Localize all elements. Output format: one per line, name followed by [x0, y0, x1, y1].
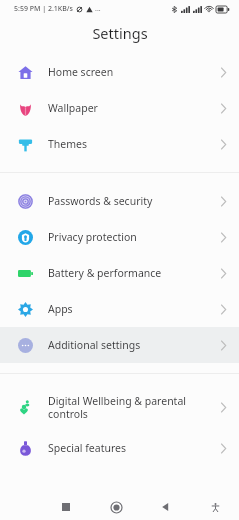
button[interactable]: Back	[155, 497, 175, 517]
staticText: Battery & performance	[48, 266, 221, 280]
staticText: Wallpaper	[48, 101, 221, 115]
button[interactable]: Special features	[0, 430, 239, 466]
button[interactable]: Apps	[0, 291, 239, 327]
button[interactable]: Additional settings	[0, 327, 239, 363]
button[interactable]: Accessibility	[205, 497, 225, 517]
staticText: Themes	[48, 137, 221, 151]
staticText: 5:59 PM | 2.1KB/s	[14, 4, 73, 14]
staticText: Special features	[48, 441, 221, 455]
button[interactable]: Passwords & security	[0, 183, 239, 219]
staticText: Home screen	[48, 65, 221, 79]
button[interactable]: Home screen	[0, 54, 239, 90]
staticText: Digital Wellbeing & parental controls	[48, 394, 221, 421]
button[interactable]: Themes	[0, 126, 239, 162]
button[interactable]: Home	[106, 497, 126, 517]
button[interactable]: Digital Wellbeing & parental controls	[0, 384, 239, 430]
staticText: Settings	[92, 23, 148, 43]
staticText: Privacy protection	[48, 230, 221, 244]
staticText: ...	[95, 4, 101, 14]
button[interactable]: Privacy protection	[0, 219, 239, 255]
button[interactable]: Wallpaper	[0, 90, 239, 126]
staticText: Additional settings	[48, 338, 221, 352]
staticText: Passwords & security	[48, 194, 221, 208]
staticText: Apps	[48, 302, 221, 316]
button[interactable]: Recent apps	[56, 497, 76, 517]
button[interactable]: Battery & performance	[0, 255, 239, 291]
